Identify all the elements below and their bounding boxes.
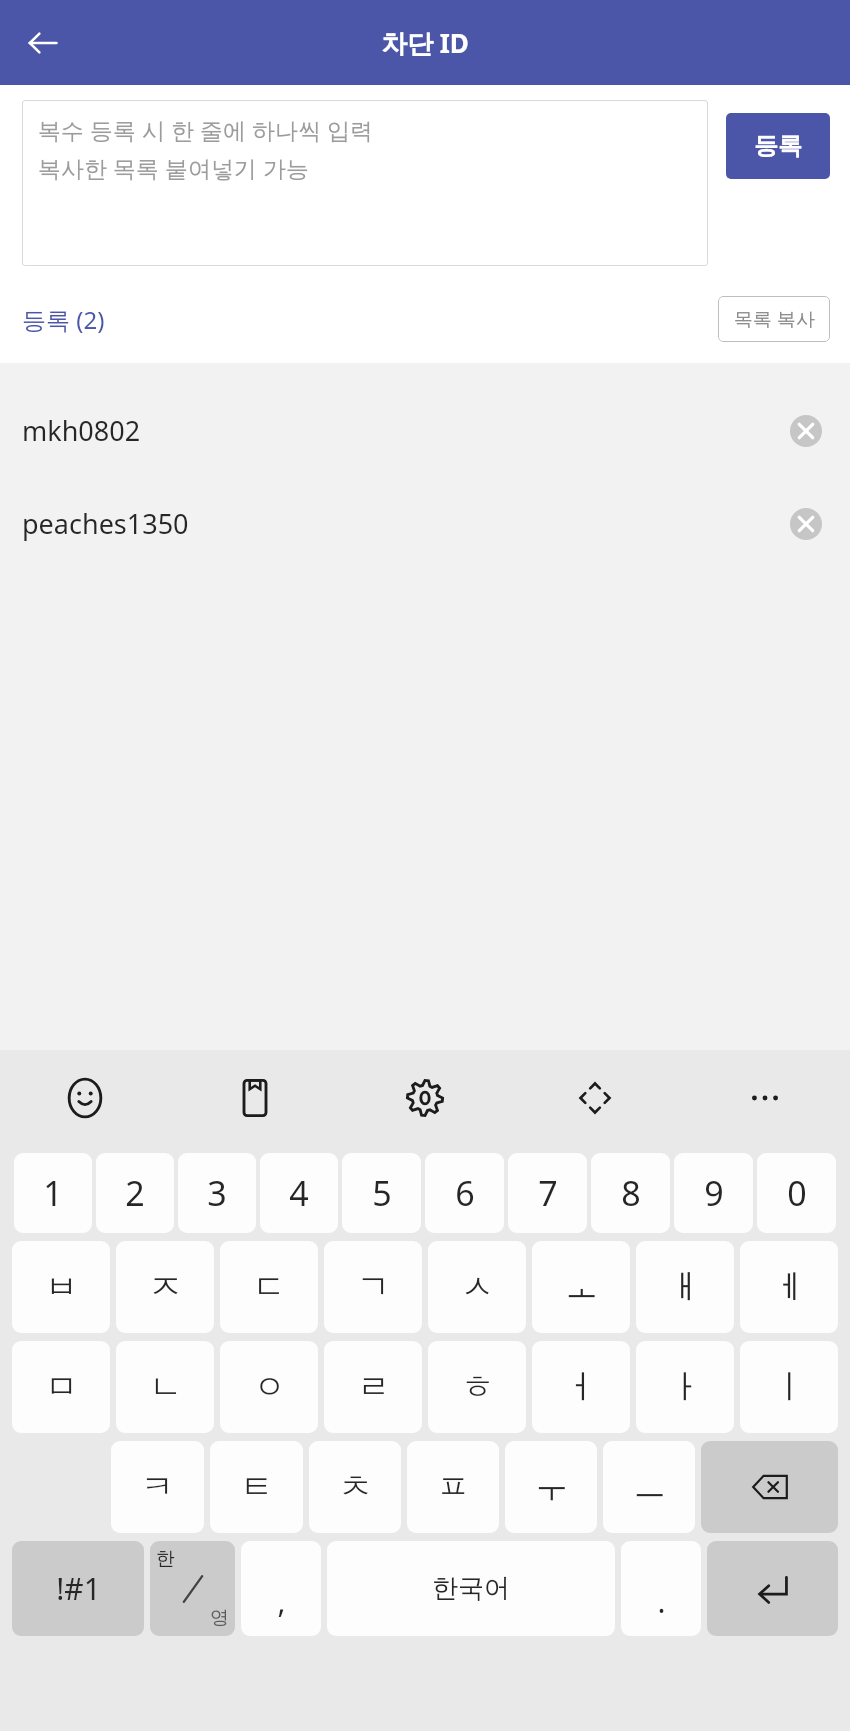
staticText: ㅔ [773, 1266, 806, 1308]
button[interactable]: ㅁ [12, 1341, 110, 1433]
staticText: 4 [289, 1170, 309, 1216]
button[interactable]: 1 [14, 1153, 92, 1233]
button[interactable]: 0 [757, 1153, 836, 1233]
button[interactable]: . [621, 1541, 701, 1636]
button[interactable]: !#1 [12, 1541, 144, 1636]
button[interactable]: ㅇ [220, 1341, 318, 1433]
button[interactable]: More options [680, 1050, 850, 1145]
staticText: ㅇ [253, 1366, 286, 1408]
button[interactable]: ㅡ [603, 1441, 695, 1533]
staticText: ㅍ [437, 1466, 470, 1508]
staticText: , [277, 1581, 286, 1622]
button[interactable]: ㅌ [210, 1441, 303, 1533]
button[interactable]: peaches1350 [0, 496, 850, 551]
staticText: 8 [621, 1170, 641, 1216]
button[interactable]: Clipboard [170, 1050, 340, 1145]
button[interactable]: ㄹ [324, 1341, 422, 1433]
staticText: ㅋ [141, 1466, 174, 1508]
staticText: 9 [704, 1170, 724, 1216]
button[interactable]: 복수 등록 시 한 줄에 하나씩 입력 [22, 100, 708, 266]
staticText: 영 [210, 1606, 229, 1630]
staticText: ㅜ [535, 1466, 568, 1508]
button[interactable]: mkh0802 [0, 403, 850, 458]
staticText: 3 [207, 1170, 227, 1216]
staticText: 목록 복사 [734, 306, 815, 332]
staticText: ㅣ [773, 1366, 806, 1408]
button[interactable]: Back [14, 14, 72, 72]
staticText: 5 [372, 1170, 392, 1216]
button[interactable]: 3 [178, 1153, 256, 1233]
button[interactable]: 목록 복사 [718, 296, 830, 342]
button[interactable]: Backspace [701, 1441, 838, 1533]
button[interactable]: ㄱ [324, 1241, 422, 1333]
button[interactable]: ㄴ [116, 1341, 214, 1433]
staticText: 2 [125, 1170, 145, 1216]
button[interactable]: 6 [425, 1153, 504, 1233]
staticText: mkh0802 [22, 412, 141, 449]
staticText: 7 [538, 1170, 558, 1216]
button[interactable]: ㅈ [116, 1241, 214, 1333]
staticText: peaches1350 [22, 505, 189, 542]
button[interactable]: ㅏ [636, 1341, 734, 1433]
button[interactable]: Move cursor [510, 1050, 680, 1145]
button[interactable]: ㅗ [532, 1241, 630, 1333]
button[interactable]: ㅋ [111, 1441, 204, 1533]
button[interactable]: ㄷ [220, 1241, 318, 1333]
button[interactable]: ㅎ [428, 1341, 526, 1433]
staticText: 한국어 [432, 1572, 510, 1605]
staticText: ㅎ [461, 1366, 494, 1408]
staticText: ㄱ [357, 1266, 390, 1308]
button[interactable]: 등록 [726, 113, 830, 179]
staticText: 복수 등록 시 한 줄에 하나씩 입력 [38, 114, 373, 145]
button[interactable]: 등록 (2) [22, 303, 105, 336]
button[interactable]: ㅍ [407, 1441, 499, 1533]
button[interactable]: Remove mkh0802 [784, 409, 828, 453]
button[interactable]: Settings [340, 1050, 510, 1145]
staticText: !#1 [56, 1568, 101, 1609]
staticText: 1 [43, 1170, 63, 1216]
staticText: ㅂ [45, 1266, 78, 1308]
button[interactable]: 9 [674, 1153, 753, 1233]
staticText: ㅅ [461, 1266, 494, 1308]
button[interactable]: ㅐ [636, 1241, 734, 1333]
staticText: ㅊ [339, 1466, 372, 1508]
button[interactable]: 한 [150, 1541, 235, 1636]
button[interactable]: ㅅ [428, 1241, 526, 1333]
button[interactable]: 2 [96, 1153, 174, 1233]
staticText: 복사한 목록 붙여넣기 가능 [38, 152, 309, 183]
button[interactable]: ㅂ [12, 1241, 110, 1333]
button[interactable]: 7 [508, 1153, 587, 1233]
button[interactable]: ㅜ [505, 1441, 597, 1533]
button[interactable]: , [241, 1541, 321, 1636]
button[interactable]: ㅣ [740, 1341, 838, 1433]
button[interactable]: 4 [260, 1153, 338, 1233]
staticText: ㄹ [357, 1366, 390, 1408]
staticText: ㄷ [253, 1266, 286, 1308]
button[interactable]: ㅓ [532, 1341, 630, 1433]
staticText: ㅌ [240, 1466, 273, 1508]
staticText: 6 [455, 1170, 475, 1216]
staticText: ㅡ [633, 1466, 666, 1508]
staticText: ㅁ [45, 1366, 78, 1408]
button[interactable]: 한국어 [327, 1541, 615, 1636]
staticText: 한 [156, 1547, 175, 1571]
staticText: ㅏ [669, 1366, 702, 1408]
button[interactable]: Emoji [0, 1050, 170, 1145]
staticText: 차단 ID [381, 25, 469, 61]
staticText: ㅗ [565, 1266, 598, 1308]
button[interactable]: ㅔ [740, 1241, 838, 1333]
button[interactable]: 5 [342, 1153, 421, 1233]
button[interactable]: Enter [707, 1541, 838, 1636]
staticText: 0 [787, 1170, 807, 1216]
staticText: ㅓ [565, 1366, 598, 1408]
button[interactable]: 8 [591, 1153, 670, 1233]
staticText: ㅈ [149, 1266, 182, 1308]
staticText: ㅐ [669, 1266, 702, 1308]
staticText: . [657, 1581, 666, 1622]
staticText: ㄴ [149, 1366, 182, 1408]
staticText: 등록 [754, 131, 802, 161]
button[interactable]: ㅊ [309, 1441, 401, 1533]
button[interactable]: Remove peaches1350 [784, 502, 828, 546]
